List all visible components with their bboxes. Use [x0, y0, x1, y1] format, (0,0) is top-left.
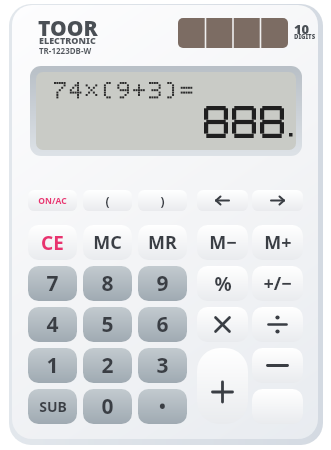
button[interactable]: Divide [252, 307, 303, 342]
staticText: 7 [46, 269, 59, 298]
button[interactable]: M− [197, 225, 248, 260]
staticText: 6 [156, 310, 169, 339]
staticText: M− [209, 230, 237, 255]
staticText: 4 [46, 310, 59, 339]
button[interactable]: MC [83, 225, 132, 260]
staticText: ) [160, 193, 165, 209]
staticText: 2 [101, 351, 114, 380]
staticText: ON/AC [38, 195, 67, 207]
staticText: ELECTRONIC [39, 34, 96, 46]
staticText: ( [105, 193, 110, 209]
staticText: DIGITS [294, 33, 316, 41]
button[interactable]: 0 [83, 389, 132, 424]
button[interactable]: SUB [28, 389, 77, 424]
button[interactable]: 8 [83, 266, 132, 301]
button[interactable]: +/− [252, 266, 303, 301]
staticText: MR [148, 230, 177, 255]
button[interactable]: 3 [138, 348, 187, 383]
button[interactable]: Arrow right [252, 190, 303, 211]
staticText: 1 [46, 351, 59, 380]
button[interactable]: 5 [83, 307, 132, 342]
button[interactable]: 4 [28, 307, 77, 342]
staticText: 8 [101, 269, 114, 298]
button[interactable]: 2 [83, 348, 132, 383]
button[interactable]: Equals [252, 389, 303, 424]
staticText: 10 [294, 20, 310, 38]
button[interactable]: ON/AC [28, 190, 77, 211]
staticText: 9 [156, 269, 169, 298]
button[interactable]: 1 [28, 348, 77, 383]
staticText: +/− [263, 271, 292, 296]
button[interactable]: 7 [28, 266, 77, 301]
button[interactable]: 9 [138, 266, 187, 301]
staticText: % [214, 271, 232, 297]
staticText: • [159, 394, 166, 419]
button[interactable]: ( [83, 190, 132, 211]
staticText: 0 [101, 392, 114, 421]
button[interactable]: 6 [138, 307, 187, 342]
staticText: CE [41, 230, 64, 256]
button[interactable]: Minus [252, 348, 303, 383]
staticText: 5 [101, 310, 114, 339]
button[interactable]: CE [28, 225, 77, 260]
button[interactable]: Plus [197, 348, 248, 424]
staticText: SUB [39, 397, 67, 416]
button[interactable]: Backspace left [197, 190, 248, 211]
staticText: TR-1223DB-W [39, 45, 92, 56]
button[interactable]: ) [138, 190, 187, 211]
staticText: 3 [156, 351, 169, 380]
button[interactable]: Multiply [197, 307, 248, 342]
button[interactable]: M+ [252, 225, 303, 260]
button[interactable]: MR [138, 225, 187, 260]
staticText: MC [93, 230, 122, 255]
staticText: TOOR [38, 14, 98, 43]
button[interactable]: • [138, 389, 187, 424]
button[interactable]: % [197, 266, 248, 301]
staticText: M+ [264, 230, 292, 255]
